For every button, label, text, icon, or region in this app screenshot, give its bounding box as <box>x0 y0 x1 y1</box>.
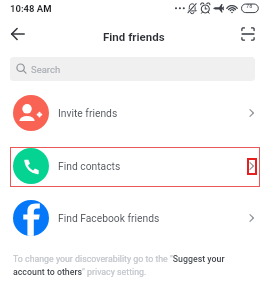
button[interactable]: Invite friends <box>0 88 267 138</box>
button[interactable]: Search <box>10 57 255 81</box>
staticText: 10:48 AM <box>10 3 52 14</box>
staticText: Find friends <box>103 30 165 43</box>
staticText: To change your discoverability go to the… <box>13 254 245 278</box>
staticText: Find contacts <box>58 160 121 172</box>
button[interactable]: Find Facebook friends <box>0 193 267 243</box>
staticText: 78 <box>246 3 253 9</box>
button[interactable]: Find contacts <box>0 141 267 191</box>
button[interactable]: Scan QR code <box>232 18 264 50</box>
staticText: Find Facebook friends <box>58 212 160 224</box>
button[interactable]: Back <box>2 18 34 50</box>
staticText: Invite friends <box>58 107 118 119</box>
staticText: Search <box>31 64 61 75</box>
